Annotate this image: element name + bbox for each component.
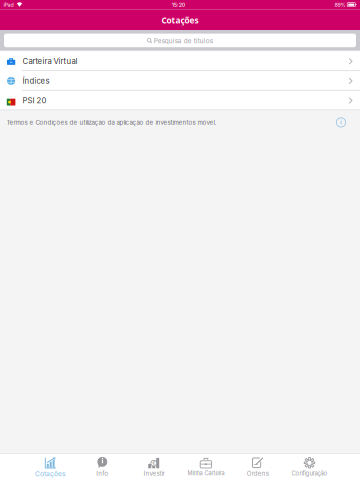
- staticText: iPad: [3, 1, 13, 8]
- staticText: Investir: [144, 470, 165, 477]
- button[interactable]: Índices: [0, 71, 360, 91]
- staticText: Configuração: [291, 470, 327, 477]
- button[interactable]: Minha Carteira: [180, 453, 232, 480]
- staticText: Cotações: [161, 15, 198, 26]
- button[interactable]: PSI 20: [0, 91, 360, 110]
- staticText: Carteira Virtual: [23, 57, 78, 66]
- button[interactable]: Ordens: [232, 453, 284, 480]
- staticText: PSI 20: [23, 96, 47, 105]
- staticText: €: [152, 460, 155, 466]
- button[interactable]: Cotações: [25, 453, 76, 480]
- staticText: Pesquisa de títulos: [154, 37, 213, 45]
- button[interactable]: Configuração: [284, 453, 335, 480]
- staticText: Info: [96, 470, 108, 477]
- button[interactable]: Carteira Virtual: [0, 52, 360, 71]
- staticText: 15:20: [172, 1, 185, 8]
- staticText: Termos e Condições de utilização da apli…: [7, 119, 217, 126]
- button[interactable]: Informação: [333, 114, 349, 130]
- staticText: Ordens: [247, 470, 269, 477]
- staticText: Índices: [23, 76, 50, 86]
- staticText: Cotações: [35, 470, 66, 478]
- staticText: Minha Carteira: [187, 470, 224, 476]
- button[interactable]: Info: [76, 453, 128, 480]
- staticText: 89%: [334, 1, 345, 8]
- button[interactable]: €: [128, 453, 180, 480]
